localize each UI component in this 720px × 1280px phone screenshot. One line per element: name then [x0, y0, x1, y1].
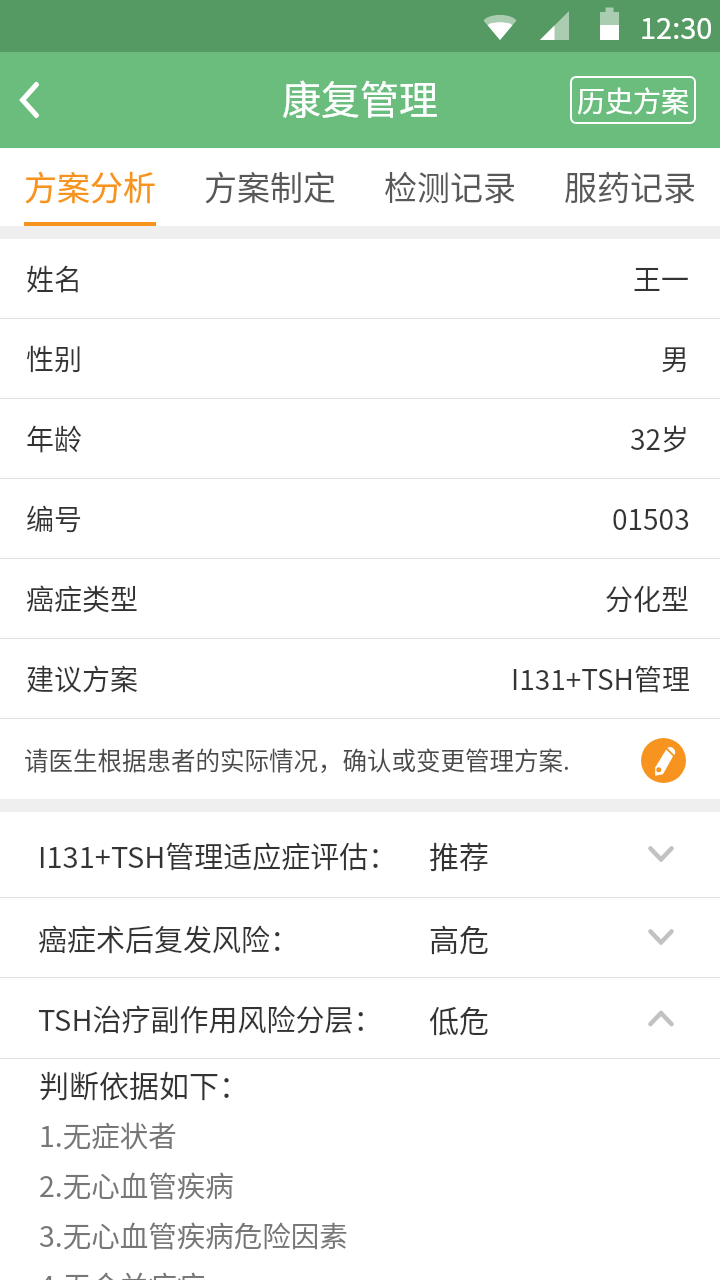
- staticText: 方案分析: [24, 162, 156, 210]
- staticText: 检测记录: [384, 162, 516, 210]
- staticText: 姓名: [26, 258, 83, 299]
- staticText: 1.无症状者: [39, 1114, 177, 1155]
- staticText: 分化型: [605, 578, 690, 619]
- button[interactable]: 检测记录: [360, 148, 540, 226]
- button[interactable]: 癌症术后复发风险：: [0, 898, 720, 977]
- button[interactable]: 姓名: [0, 239, 720, 318]
- staticText: 性别: [26, 338, 83, 379]
- staticText: 康复管理: [282, 69, 439, 125]
- staticText: 高危: [429, 916, 489, 959]
- staticText: TSH治疗副作用风险分层：: [38, 997, 383, 1039]
- staticText: 历史方案: [577, 80, 690, 121]
- staticText: 推荐: [429, 833, 489, 876]
- button[interactable]: I131+TSH管理适应症评估：: [0, 812, 720, 897]
- staticText: 王一: [633, 258, 690, 299]
- staticText: 服药记录: [564, 162, 696, 210]
- button[interactable]: 方案制定: [180, 148, 360, 226]
- button[interactable]: 年龄: [0, 399, 720, 478]
- button[interactable]: 癌症类型: [0, 559, 720, 638]
- staticText: 01503: [612, 498, 690, 539]
- button[interactable]: 历史方案: [570, 76, 696, 124]
- staticText: 男: [661, 338, 690, 379]
- staticText: 判断依据如下：: [39, 1062, 249, 1105]
- staticText: 3.无心血管疾病危险因素: [39, 1214, 348, 1255]
- button[interactable]: Back: [0, 52, 62, 148]
- staticText: I131+TSH管理: [511, 658, 690, 699]
- staticText: 年龄: [26, 418, 83, 459]
- button[interactable]: 建议方案: [0, 639, 720, 718]
- staticText: 请医生根据患者的实际情况，确认或变更管理方案.: [24, 742, 570, 777]
- button[interactable]: TSH治疗副作用风险分层：: [0, 978, 720, 1058]
- staticText: 编号: [26, 498, 83, 539]
- staticText: 癌症术后复发风险：: [38, 917, 300, 959]
- staticText: 32岁: [630, 418, 690, 459]
- button[interactable]: 编号: [0, 479, 720, 558]
- staticText: 方案制定: [204, 162, 336, 210]
- staticText: 癌症类型: [26, 578, 139, 619]
- staticText: I131+TSH管理适应症评估：: [38, 834, 398, 876]
- staticText: 12:30: [640, 5, 713, 47]
- button[interactable]: 性别: [0, 319, 720, 398]
- staticText: 建议方案: [26, 658, 139, 699]
- button[interactable]: 方案分析: [0, 148, 180, 226]
- staticText: 4.无合并症病: [39, 1264, 206, 1280]
- staticText: 2.无心血管疾病: [39, 1164, 234, 1205]
- button[interactable]: Edit: [641, 738, 686, 783]
- staticText: 低危: [429, 997, 489, 1040]
- button[interactable]: 服药记录: [540, 148, 720, 226]
